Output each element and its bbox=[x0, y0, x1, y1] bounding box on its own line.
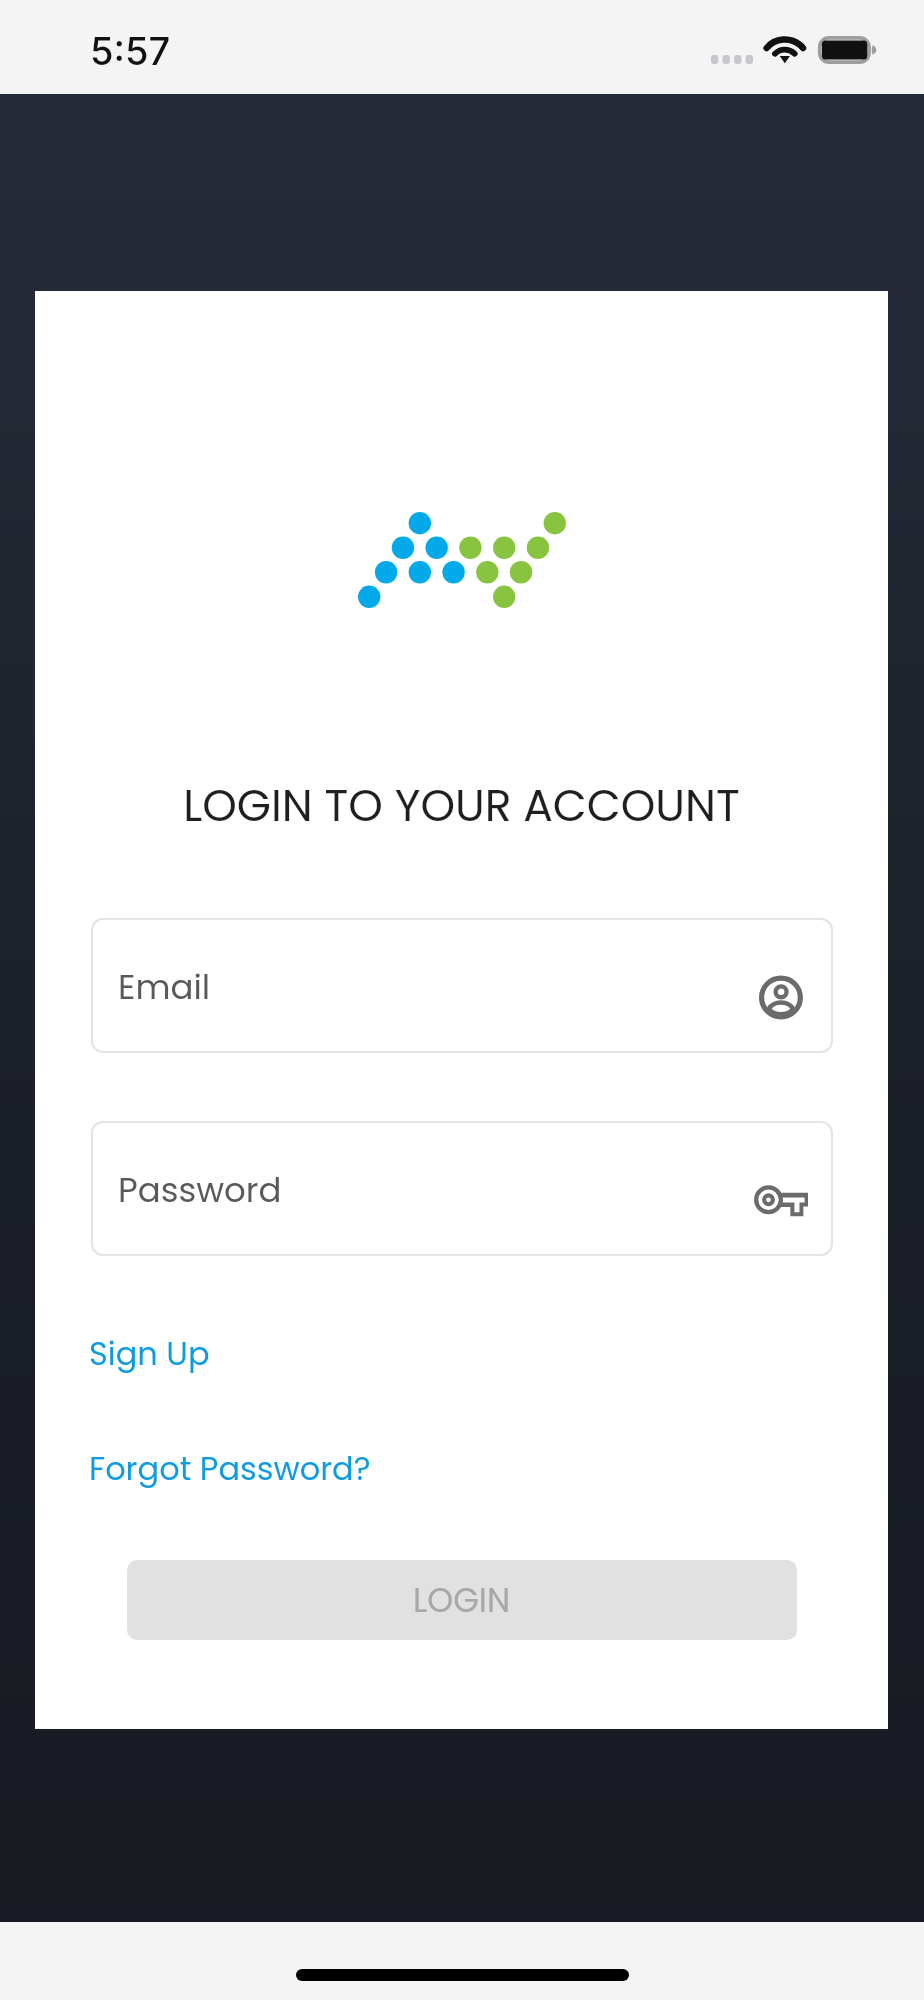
staticText: 5:57 bbox=[90, 28, 171, 74]
staticText: LOGIN bbox=[413, 1577, 511, 1623]
button[interactable]: Sign Up bbox=[89, 1331, 210, 1376]
staticText: LOGIN TO YOUR ACCOUNT bbox=[35, 775, 888, 837]
staticText: Forgot Password? bbox=[89, 1446, 371, 1491]
staticText: Sign Up bbox=[89, 1331, 210, 1376]
button[interactable]: Email bbox=[91, 918, 833, 1053]
button[interactable]: Password bbox=[91, 1121, 833, 1256]
button[interactable]: Forgot Password? bbox=[89, 1446, 371, 1491]
other: Account bbox=[759, 975, 803, 1019]
staticText: Password bbox=[118, 1166, 282, 1214]
staticText: Email bbox=[118, 963, 211, 1011]
other: Password bbox=[754, 1184, 808, 1216]
button[interactable]: LOGIN bbox=[127, 1560, 797, 1640]
